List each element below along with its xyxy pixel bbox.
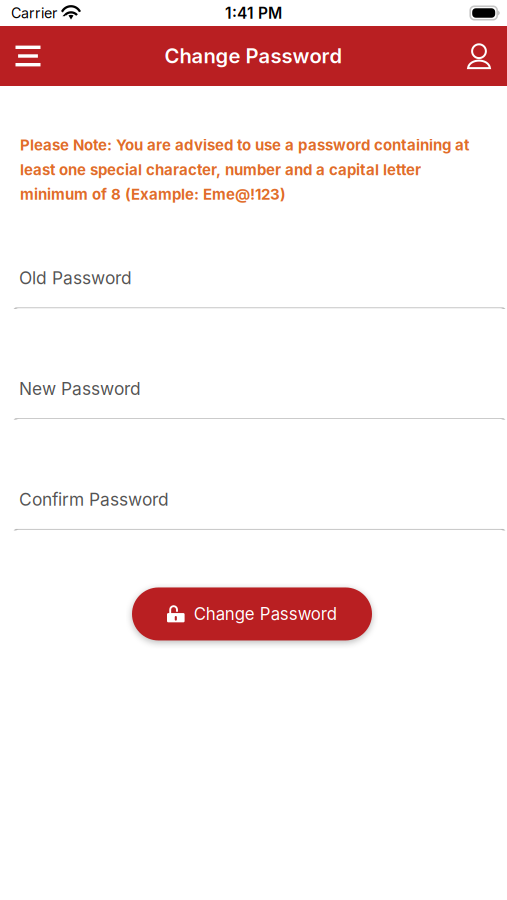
staticText: Old Password: [19, 267, 132, 288]
secureTextField[interactable]: Old Password: [0, 267, 507, 309]
staticText: minimum of 8 (Example: Eme@!123): [20, 185, 286, 203]
staticText: 1:41 PM: [225, 4, 282, 22]
staticText: Please Note: You are advised to use a pa…: [20, 136, 469, 154]
secureTextField[interactable]: New Password: [0, 378, 507, 420]
staticText: Confirm Password: [19, 489, 169, 510]
secureTextField[interactable]: Confirm Password: [0, 489, 507, 530]
button[interactable]: New Password: [0, 378, 507, 420]
staticText: least one special character, number and …: [20, 161, 421, 179]
staticText: Change Password: [194, 604, 337, 624]
staticText: New Password: [19, 378, 141, 399]
button[interactable]: Old Password: [0, 267, 507, 309]
button[interactable]: Profile: [451, 26, 507, 86]
staticText: Carrier: [11, 4, 57, 22]
button[interactable]: Menu: [0, 26, 56, 86]
button[interactable]: Confirm Password: [0, 489, 507, 530]
staticText: Change Password: [164, 44, 342, 68]
button[interactable]: Change Password: [132, 587, 372, 640]
